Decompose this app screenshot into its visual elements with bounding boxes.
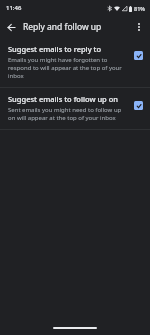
staticText: Suggest emails to reply to (8, 44, 102, 54)
staticText: 81% (134, 5, 145, 12)
button[interactable]: Toggle: Suggest emails to follow up on (131, 98, 145, 112)
staticText: Emails you might have forgotten to respo… (8, 56, 127, 80)
button[interactable]: Back (2, 18, 20, 36)
button[interactable]: Toggle: Suggest emails to reply to (131, 48, 145, 62)
staticText: Reply and follow up (23, 21, 102, 33)
button[interactable]: More options (130, 18, 148, 36)
button[interactable]: Suggest emails to reply to (0, 38, 150, 87)
staticText: Sent emails you might need to follow up … (8, 106, 127, 122)
staticText: 11:46 (6, 4, 22, 12)
staticText: Suggest emails to follow up on (8, 94, 118, 104)
button[interactable]: Suggest emails to follow up on (0, 88, 150, 129)
